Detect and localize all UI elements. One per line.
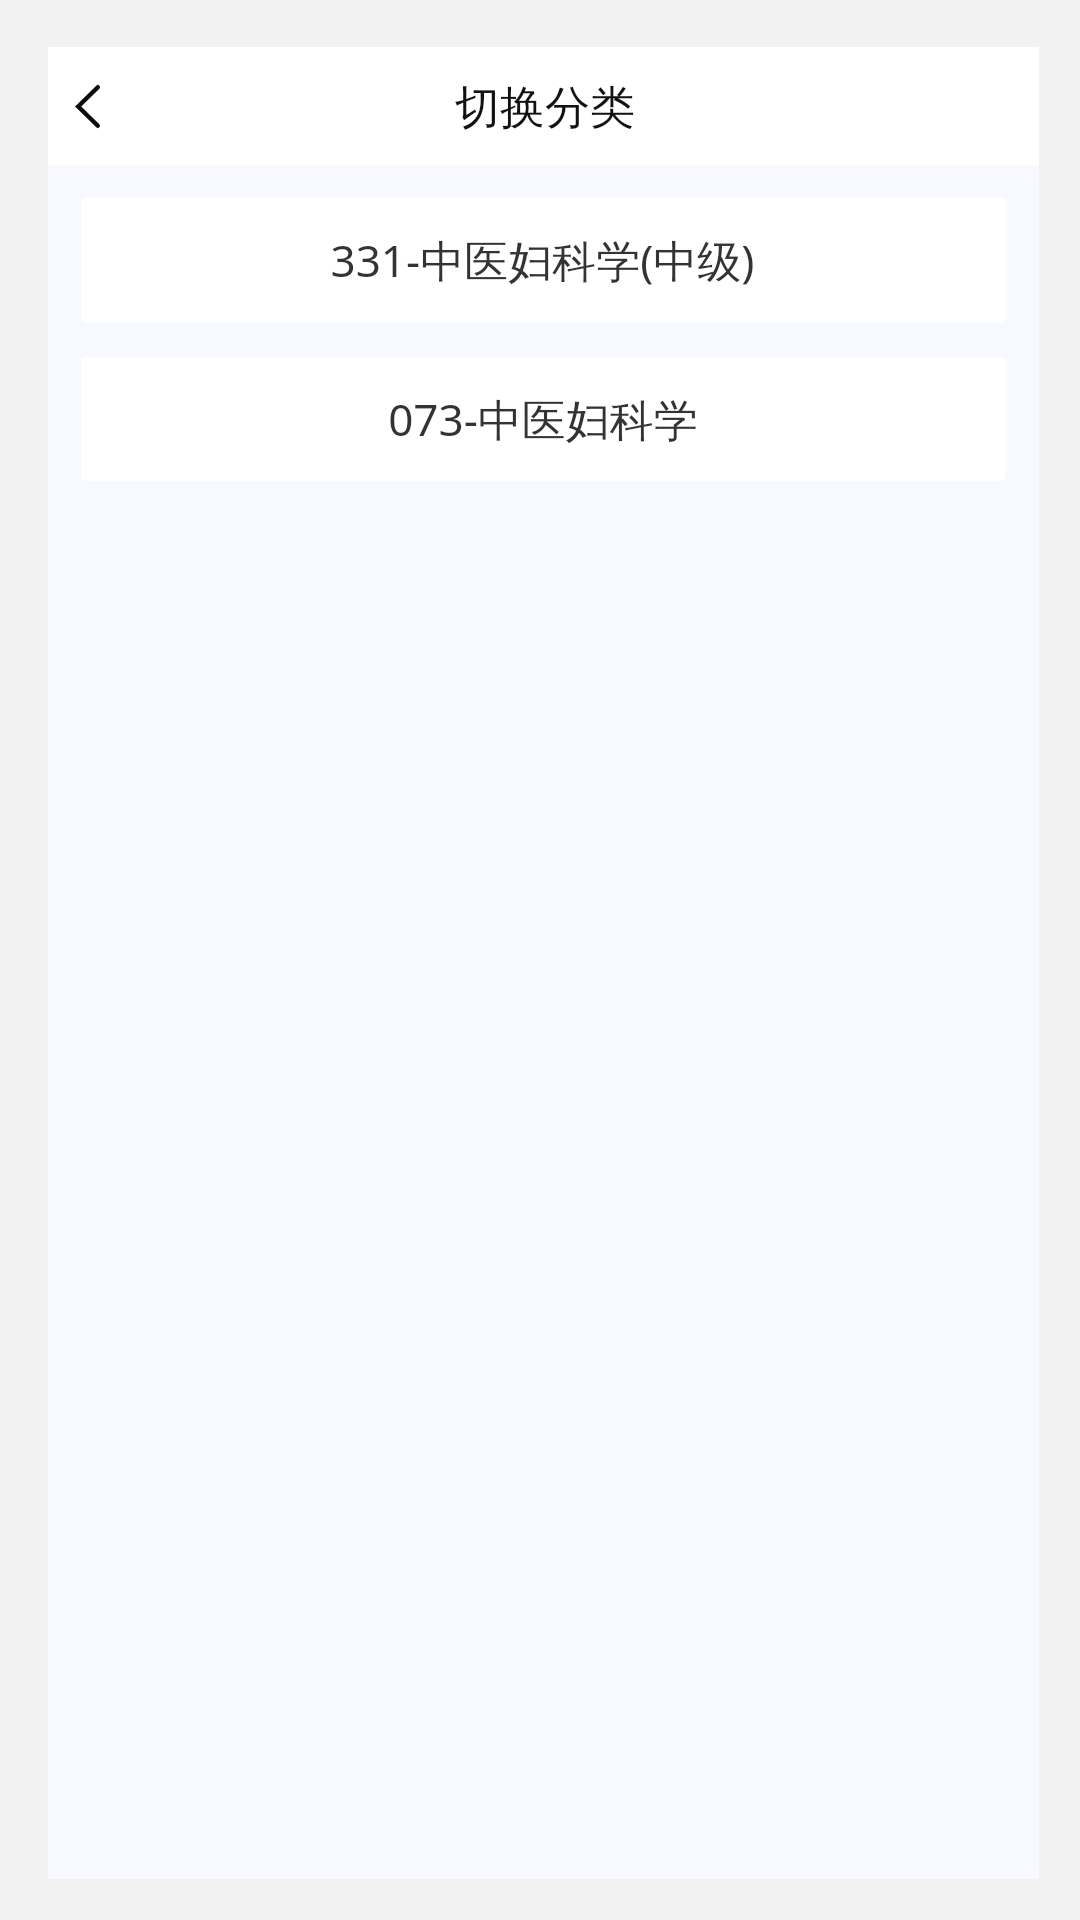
button[interactable]: 331-中医妇科学(中级) (81, 198, 1006, 322)
button[interactable]: 073-中医妇科学 (81, 357, 1006, 481)
staticText: 331-中医妇科学(中级) (330, 230, 755, 290)
button[interactable]: Back (48, 47, 158, 165)
staticText: 切换分类 (455, 80, 635, 137)
staticText: 073-中医妇科学 (388, 389, 698, 449)
